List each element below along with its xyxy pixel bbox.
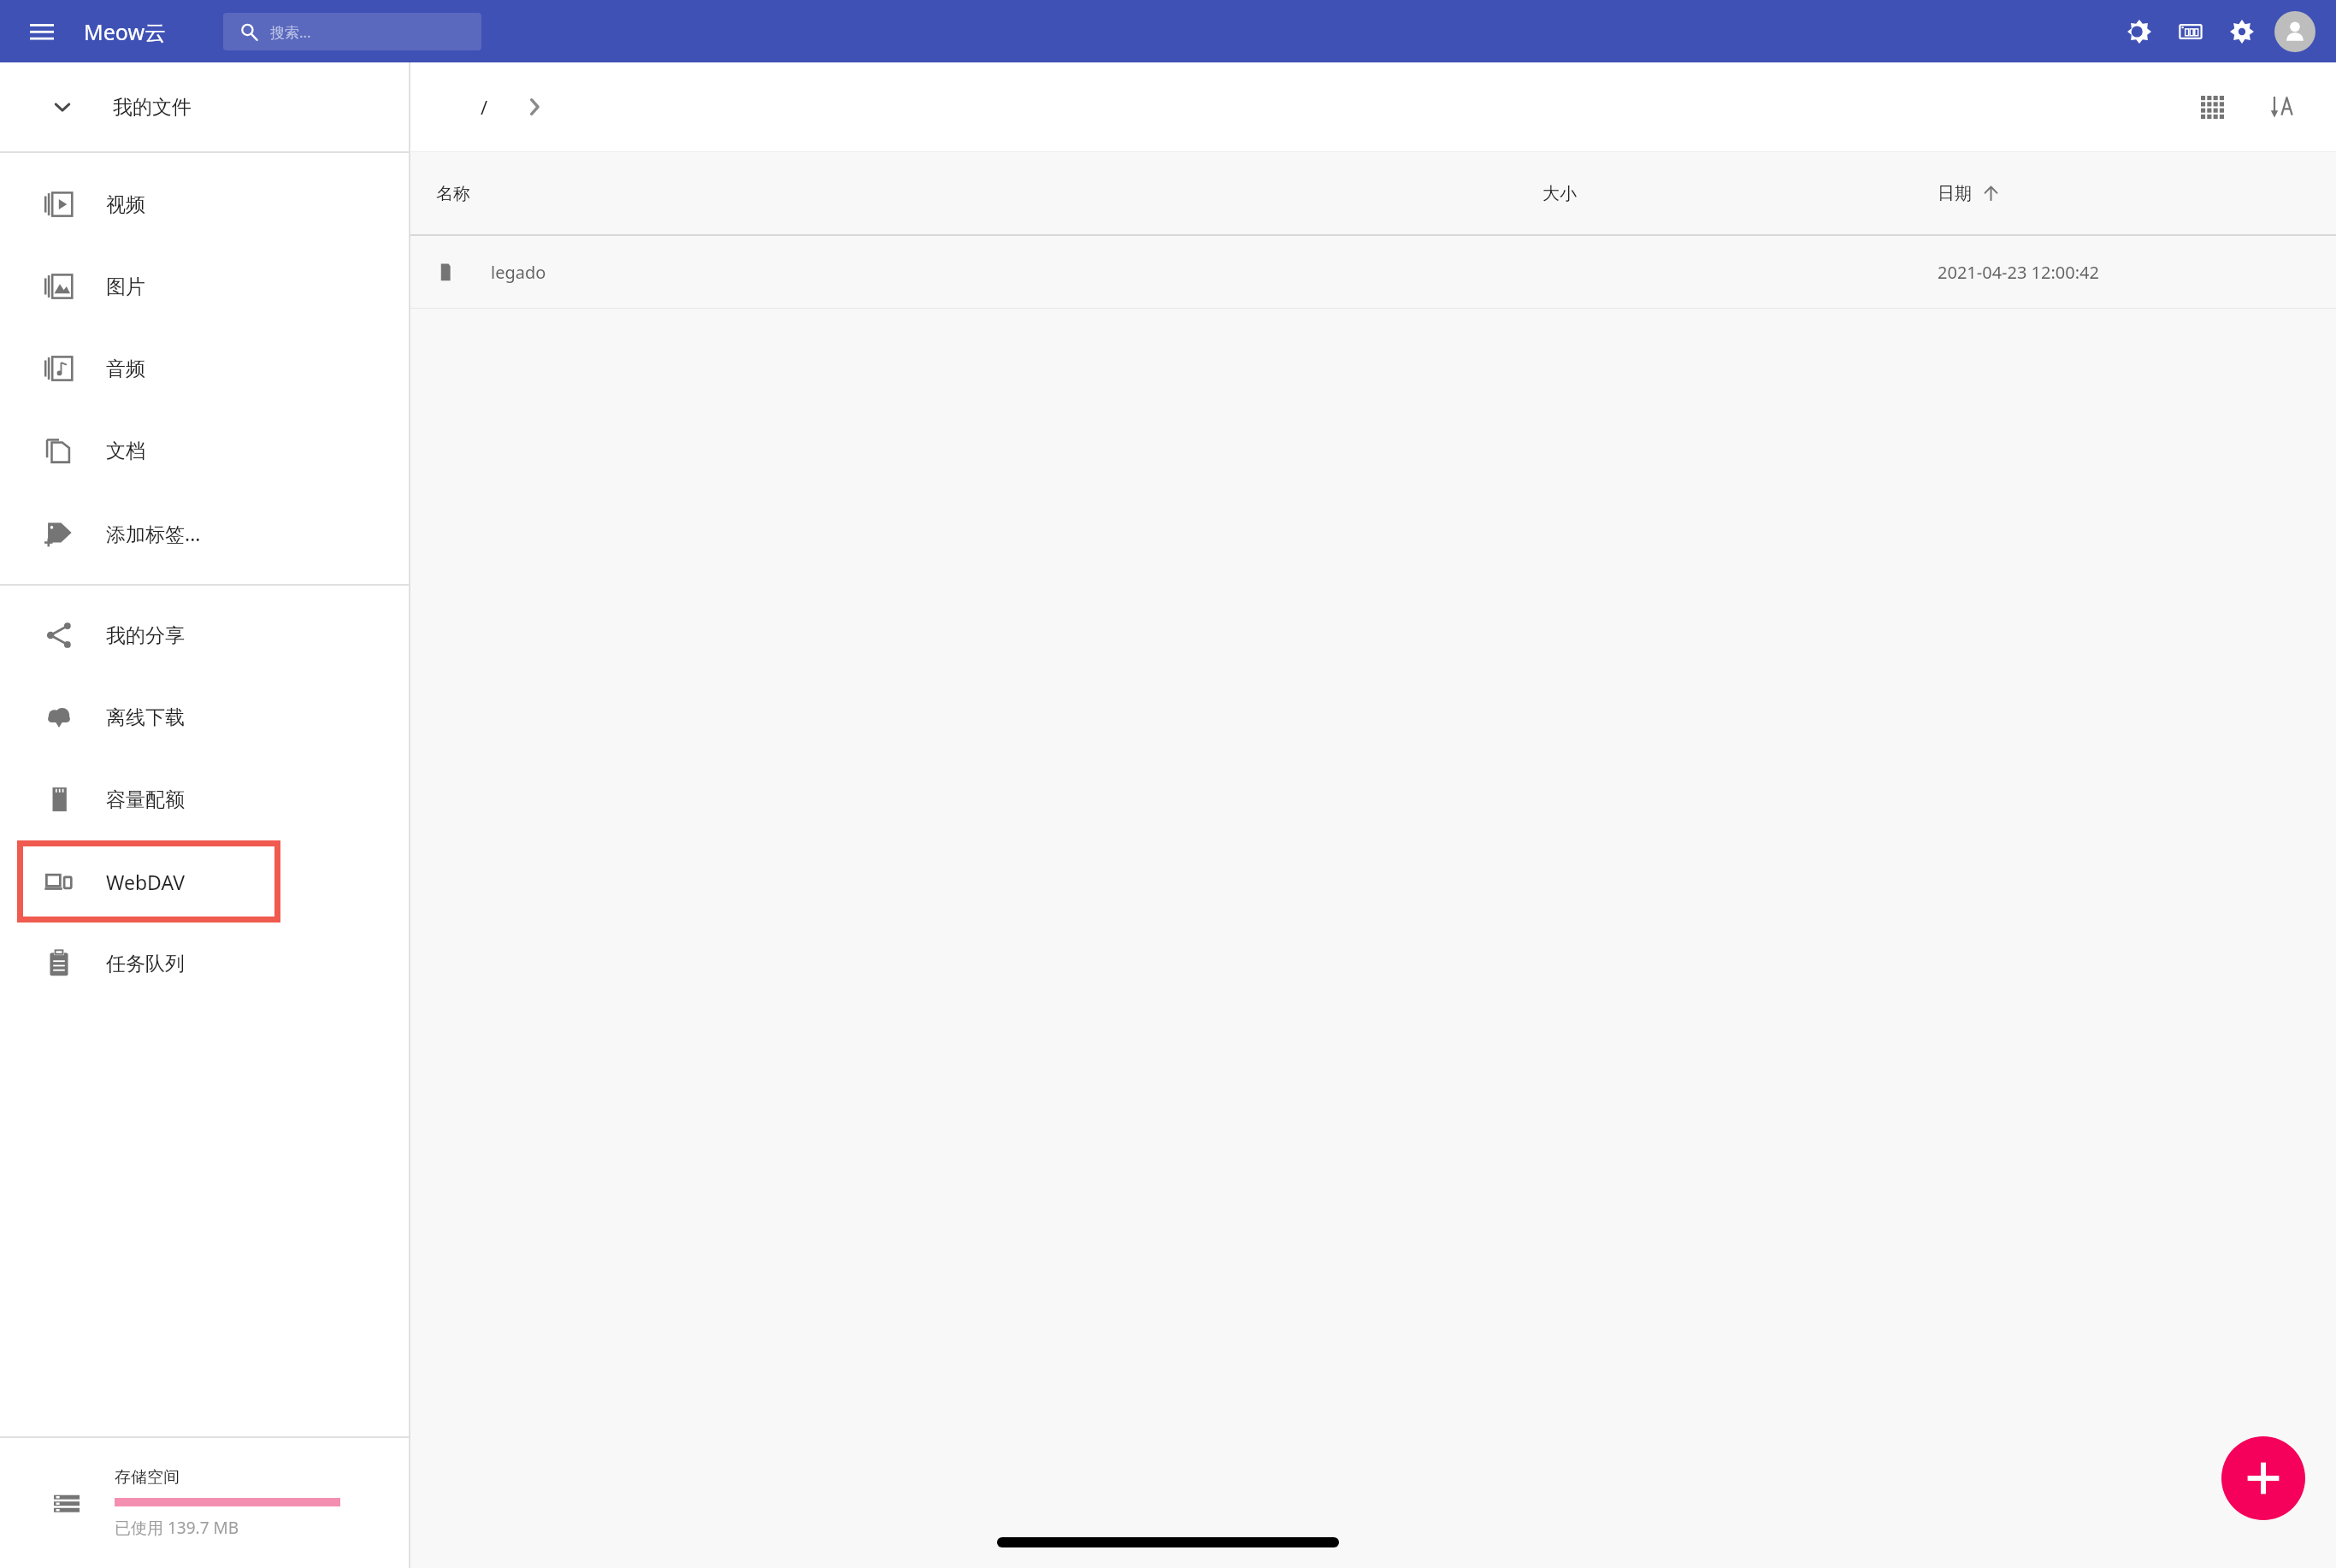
button[interactable]: 添加标签... [0, 492, 409, 574]
staticText: 已使用 139.7 MB [115, 1517, 239, 1539]
staticText: 我的文件 [113, 95, 192, 120]
button[interactable]: Server [2168, 9, 2213, 54]
button[interactable]: Settings [2220, 9, 2264, 54]
button[interactable]: / [469, 85, 500, 128]
button[interactable]: 搜索... [223, 13, 481, 50]
button[interactable]: Sort [2259, 84, 2305, 130]
button[interactable]: 文档 [0, 410, 409, 492]
button[interactable]: 容量配额 [0, 758, 409, 840]
staticText: 离线下载 [106, 705, 185, 730]
staticText: legado [491, 261, 546, 284]
staticText: 图片 [106, 274, 145, 299]
button[interactable]: Grid view [2189, 84, 2235, 130]
staticText: 文档 [106, 439, 145, 463]
staticText: / [481, 94, 488, 120]
button[interactable]: Add [2221, 1436, 2305, 1520]
button[interactable]: Dark mode [2117, 9, 2162, 54]
staticText: 搜索... [270, 22, 311, 42]
staticText: 名称 [436, 183, 470, 204]
button[interactable]: legado [410, 236, 2336, 308]
button[interactable]: Account [2274, 11, 2315, 52]
button[interactable]: 我的分享 [0, 594, 409, 676]
staticText: 任务队列 [106, 952, 185, 976]
button[interactable]: 我的文件 [0, 62, 409, 151]
staticText: 我的分享 [106, 623, 185, 648]
button[interactable]: WebDAV [0, 840, 409, 923]
button[interactable]: Forward [519, 91, 550, 122]
staticText: 存储空间 [115, 1467, 180, 1488]
button[interactable]: Menu [19, 9, 65, 55]
button[interactable]: 图片 [0, 245, 409, 327]
staticText: 添加标签... [106, 520, 201, 546]
staticText: 日期 [1938, 183, 1972, 204]
staticText: WebDAV [106, 869, 185, 895]
staticText: 大小 [1543, 183, 1577, 204]
staticText: 音频 [106, 357, 145, 381]
staticText: 容量配额 [106, 787, 185, 812]
staticText: 视频 [106, 192, 145, 217]
button[interactable]: 视频 [0, 163, 409, 245]
staticText: Meow云 [84, 17, 167, 46]
button[interactable]: 任务队列 [0, 923, 409, 1005]
staticText: 2021-04-23 12:00:42 [1938, 261, 2099, 284]
button[interactable]: 音频 [0, 327, 409, 410]
button[interactable]: 存储空间 [0, 1438, 409, 1568]
button[interactable]: 离线下载 [0, 676, 409, 758]
